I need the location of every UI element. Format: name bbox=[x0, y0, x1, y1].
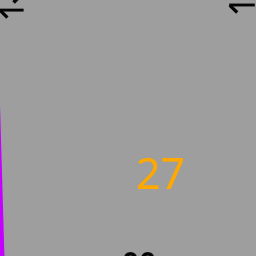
button[interactable]: 00 bbox=[122, 242, 157, 256]
button[interactable]: More options bbox=[224, 0, 256, 33]
button[interactable]: 27 bbox=[136, 143, 186, 202]
button[interactable]: Back bbox=[0, 0, 34, 38]
